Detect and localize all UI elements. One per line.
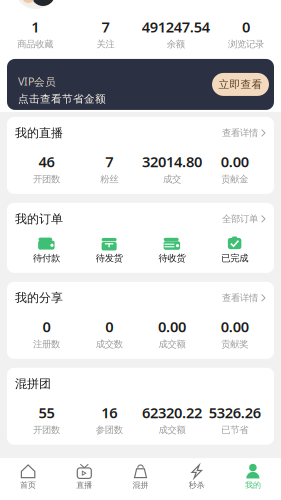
staticText: 点击查看节省金额: [18, 92, 106, 106]
button[interactable]: 待发货: [78, 236, 141, 264]
staticText: 立即查看: [218, 78, 262, 91]
staticText: 7: [105, 152, 113, 171]
staticText: 全部订单: [222, 213, 258, 225]
staticText: 1: [31, 17, 39, 36]
staticText: 贡献金: [221, 173, 248, 185]
staticText: 余额: [167, 38, 185, 50]
staticText: 32014.80: [142, 152, 202, 171]
staticText: 首页: [20, 480, 36, 490]
staticText: 0.00: [158, 317, 186, 336]
staticText: 我的: [245, 480, 261, 490]
staticText: 成交: [163, 173, 181, 185]
staticText: 混拼团: [15, 376, 51, 391]
button[interactable]: 首页: [0, 464, 56, 490]
staticText: 待发货: [96, 252, 123, 264]
staticText: 混拼: [132, 480, 148, 490]
staticText: 待付款: [33, 252, 60, 264]
staticText: 关注: [96, 38, 114, 50]
button[interactable]: 待收货: [140, 236, 203, 264]
staticText: 查看详情: [222, 292, 258, 304]
staticText: 55: [38, 403, 54, 422]
staticText: 0: [42, 317, 50, 336]
staticText: 62320.22: [142, 403, 202, 422]
staticText: 7: [101, 17, 109, 36]
button[interactable]: 查看详情: [222, 127, 266, 139]
staticText: 我的分享: [15, 290, 63, 305]
staticText: 秒杀: [189, 480, 205, 490]
staticText: 粉丝: [100, 173, 118, 185]
staticText: 待收货: [158, 252, 185, 264]
staticText: 开团数: [33, 173, 60, 185]
button[interactable]: 待付款: [15, 236, 78, 264]
staticText: 查看详情: [222, 127, 258, 139]
staticText: 46: [38, 152, 54, 171]
staticText: VIP会员: [18, 74, 56, 88]
staticText: 开团数: [33, 424, 60, 436]
button[interactable]: VIP会员: [7, 59, 274, 110]
staticText: 我的订单: [15, 211, 63, 226]
staticText: 已完成: [221, 252, 248, 264]
staticText: 5326.26: [209, 403, 261, 422]
staticText: 0: [105, 317, 113, 336]
button[interactable]: 秒杀: [169, 464, 225, 490]
staticText: 成交额: [158, 424, 185, 436]
button[interactable]: 已完成: [203, 236, 266, 264]
staticText: 我的直播: [15, 126, 63, 140]
staticText: 参团数: [96, 424, 123, 436]
staticText: 16: [101, 403, 117, 422]
button[interactable]: 全部订单: [222, 213, 266, 225]
staticText: 0: [242, 17, 250, 36]
staticText: 浏览记录: [228, 38, 264, 50]
staticText: 0.00: [221, 152, 249, 171]
staticText: 0.00: [221, 317, 249, 336]
staticText: 成交额: [158, 338, 185, 350]
staticText: 成交数: [96, 338, 123, 350]
button[interactable]: 直播: [56, 464, 112, 490]
staticText: 贡献奖: [221, 338, 248, 350]
staticText: 商品收藏: [17, 38, 53, 50]
staticText: 直播: [76, 480, 92, 490]
staticText: 注册数: [33, 338, 60, 350]
button[interactable]: 我的: [225, 464, 281, 490]
button[interactable]: 查看详情: [222, 292, 266, 304]
staticText: 已节省: [221, 424, 248, 436]
staticText: 491247.54: [142, 17, 210, 36]
button[interactable]: 混拼: [112, 464, 169, 490]
